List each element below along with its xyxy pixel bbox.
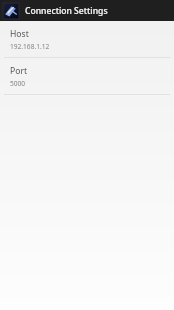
staticText: Port — [10, 65, 28, 77]
button[interactable]: Host — [0, 21, 174, 57]
button[interactable]: App icon — [0, 0, 174, 21]
staticText: 5000 — [10, 79, 26, 88]
staticText: 192.168.1.12 — [10, 42, 50, 51]
other: App icon — [3, 3, 19, 19]
staticText: Host — [10, 28, 29, 40]
staticText: Connection Settings — [25, 5, 108, 17]
button[interactable]: Port — [0, 58, 174, 94]
